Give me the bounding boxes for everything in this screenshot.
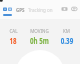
staticText: 18 (9, 35, 17, 46)
staticText: 0.39 (61, 35, 73, 46)
staticText: KM (63, 28, 70, 34)
staticText: CAL (9, 28, 18, 34)
button[interactable]: KM (53, 28, 80, 46)
staticText: Tracking on (28, 7, 53, 13)
button[interactable]: MOVING (26, 28, 53, 46)
staticText: 0h 5m (30, 35, 49, 46)
button[interactable]: Map layers (3, 7, 7, 11)
button[interactable]: Satellite view (8, 7, 12, 11)
staticText: GPS (16, 7, 25, 13)
button[interactable]: Messages (71, 6, 78, 12)
button[interactable]: CAL (0, 28, 26, 46)
staticText: MOVING (30, 28, 49, 34)
button[interactable]: Camera (61, 6, 68, 12)
